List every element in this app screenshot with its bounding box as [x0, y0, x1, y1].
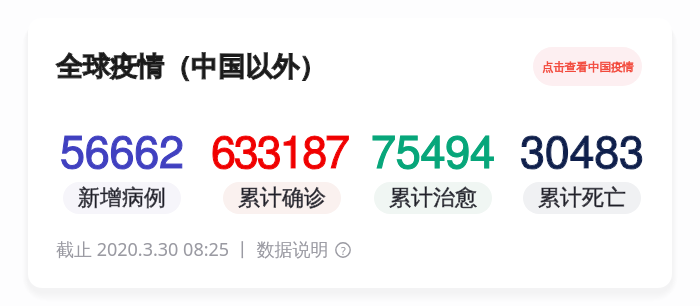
- staticText: 累计治愈: [389, 184, 477, 212]
- button[interactable]: 新增病例: [63, 182, 181, 214]
- staticText: 点击查看中国疫情: [542, 60, 634, 74]
- staticText: 累计死亡: [538, 184, 626, 212]
- staticText: 累计确诊: [238, 184, 326, 212]
- staticText: 累计死亡: [538, 184, 626, 212]
- button[interactable]: 累计死亡: [523, 182, 641, 214]
- staticText: 累计确诊: [238, 184, 326, 212]
- staticText: 30483: [520, 116, 644, 180]
- button[interactable]: 数据说明: [334, 241, 352, 259]
- staticText: 56662: [60, 116, 184, 180]
- staticText: 新增病例: [78, 184, 166, 212]
- button[interactable]: 累计确诊: [223, 182, 341, 214]
- button[interactable]: 全球疫情（中国以外）: [28, 18, 672, 288]
- button[interactable]: 累计治愈: [374, 182, 492, 214]
- staticText: 56662: [60, 116, 184, 180]
- staticText: 633187: [211, 116, 348, 180]
- staticText: ?: [341, 243, 346, 258]
- staticText: 全球疫情（中国以外）: [56, 50, 326, 84]
- staticText: 75494: [371, 116, 495, 180]
- staticText: 累计治愈: [389, 184, 477, 212]
- button[interactable]: 点击查看中国疫情: [533, 47, 642, 86]
- staticText: 633187: [211, 116, 348, 180]
- staticText: 30483: [520, 116, 644, 180]
- staticText: 75494: [371, 116, 495, 180]
- staticText: 截止 2020.3.30 08:25 丨 数据说明: [56, 237, 334, 262]
- staticText: 新增病例: [78, 184, 166, 212]
- staticText: 点击查看中国疫情: [542, 60, 634, 74]
- staticText: 全球疫情（中国以外）: [56, 50, 326, 84]
